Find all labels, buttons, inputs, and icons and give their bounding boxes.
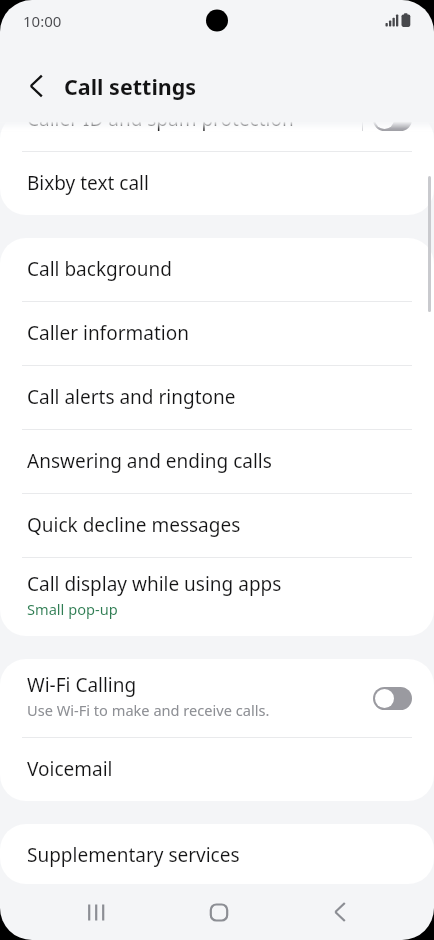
button[interactable]: Recent apps — [68, 886, 125, 938]
staticText: Answering and ending calls — [27, 448, 272, 474]
button[interactable]: Navigate up — [14, 63, 60, 109]
staticText: Caller information — [27, 320, 189, 346]
staticText: Use Wi-Fi to make and receive calls. — [27, 700, 270, 720]
staticText: Small pop-up — [27, 599, 118, 619]
button[interactable]: Supplementary services — [0, 824, 434, 884]
button[interactable]: Quick decline messages — [0, 494, 434, 557]
staticText: Voicemail — [27, 756, 113, 782]
button[interactable]: Caller information — [0, 302, 434, 365]
button[interactable]: Toggle — [373, 113, 412, 131]
button[interactable]: Caller ID and spam protection — [0, 113, 434, 151]
staticText: Quick decline messages — [27, 512, 241, 538]
staticText: Call display while using apps — [27, 571, 282, 597]
button[interactable]: Back — [311, 886, 368, 938]
button[interactable]: Call display while using apps — [0, 558, 434, 636]
staticText: Caller ID and spam protection — [27, 113, 294, 132]
button[interactable]: Call background — [0, 238, 434, 301]
button[interactable]: Answering and ending calls — [0, 430, 434, 493]
staticText: Call background — [27, 256, 172, 282]
button[interactable]: Voicemail — [0, 738, 434, 801]
staticText: Call alerts and ringtone — [27, 384, 236, 410]
button[interactable]: Home — [190, 886, 247, 938]
staticText: Supplementary services — [27, 842, 240, 868]
button[interactable]: Bixby text call — [0, 152, 434, 215]
staticText: Wi-Fi Calling — [27, 672, 137, 698]
button[interactable]: Wi-Fi Calling — [0, 659, 434, 737]
staticText: Call settings — [64, 72, 197, 101]
staticText: 10:00 — [23, 11, 62, 31]
button[interactable]: Call alerts and ringtone — [0, 366, 434, 429]
staticText: Bixby text call — [27, 170, 149, 196]
button[interactable]: Toggle — [373, 687, 412, 710]
